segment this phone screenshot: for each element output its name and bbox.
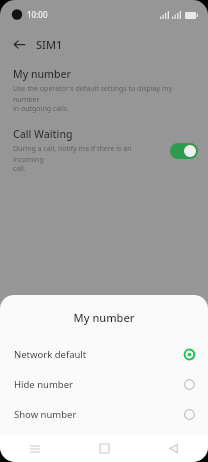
staticText: Show number xyxy=(14,408,184,421)
staticText: Network default xyxy=(14,348,184,361)
staticText: 10:00 xyxy=(27,9,48,20)
button[interactable]: My number xyxy=(0,67,208,114)
button[interactable]: Back xyxy=(139,435,208,462)
staticText: My number xyxy=(13,67,72,81)
button[interactable]: Hide number xyxy=(0,369,208,399)
button[interactable]: Call Waiting xyxy=(0,127,208,174)
button[interactable]: Call waiting toggle, on xyxy=(170,143,198,159)
staticText: in outgoing calls. xyxy=(13,104,69,114)
staticText: Hide number xyxy=(14,378,184,391)
button[interactable]: Back xyxy=(7,32,31,56)
staticText: My number xyxy=(0,310,208,325)
button[interactable]: Show number xyxy=(0,399,208,429)
button[interactable]: Network default xyxy=(0,339,208,369)
staticText: call. xyxy=(13,164,26,174)
button[interactable]: Home xyxy=(70,435,139,462)
button[interactable]: Recent apps xyxy=(0,435,70,462)
staticText: Call Waiting xyxy=(13,127,73,141)
staticText: During a call, notify me if there is an … xyxy=(13,144,164,164)
staticText: SIM1 xyxy=(36,37,63,52)
staticText: Use the operator's default settings to d… xyxy=(13,84,198,104)
